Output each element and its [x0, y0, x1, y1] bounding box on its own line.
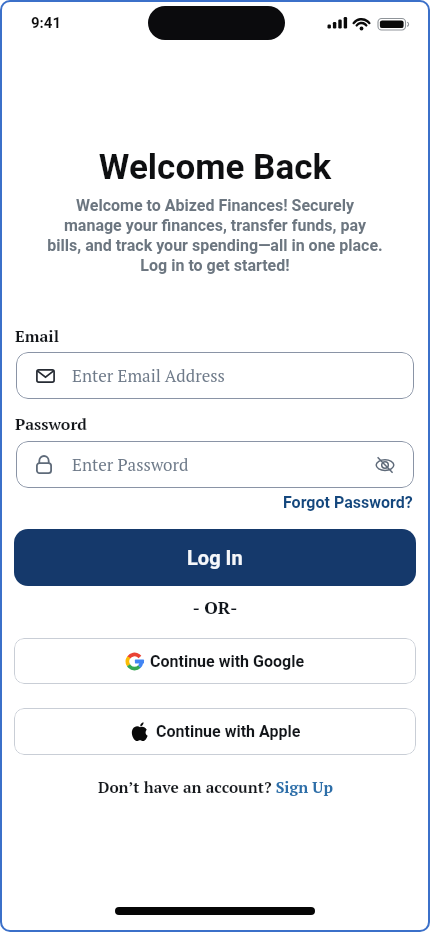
staticText: Continue with Apple: [156, 722, 301, 741]
button[interactable]: Log In: [14, 529, 416, 586]
button[interactable]: Don’t have an account? Sign Up: [0, 777, 430, 798]
button[interactable]: Enter Email Address: [16, 352, 414, 399]
button[interactable]: Forgot Password?: [283, 493, 413, 512]
staticText: Don’t have an account? Sign Up: [98, 777, 333, 798]
staticText: Welcome to Abized Finances! Securely man…: [0, 196, 430, 275]
staticText: Log In: [187, 546, 243, 569]
staticText: Continue with Google: [150, 652, 305, 671]
staticText: Enter Password: [72, 453, 189, 476]
button[interactable]: [375, 456, 395, 474]
button[interactable]: Enter Password: [16, 441, 414, 488]
staticText: Welcome Back: [0, 147, 430, 188]
staticText: Email: [15, 325, 59, 346]
staticText: Password: [15, 413, 87, 434]
staticText: Enter Email Address: [72, 364, 225, 387]
button[interactable]: Continue with Apple: [14, 708, 416, 755]
button[interactable]: Continue with Google: [14, 638, 416, 684]
staticText: - OR-: [0, 595, 430, 619]
staticText: 9:41: [31, 14, 62, 32]
